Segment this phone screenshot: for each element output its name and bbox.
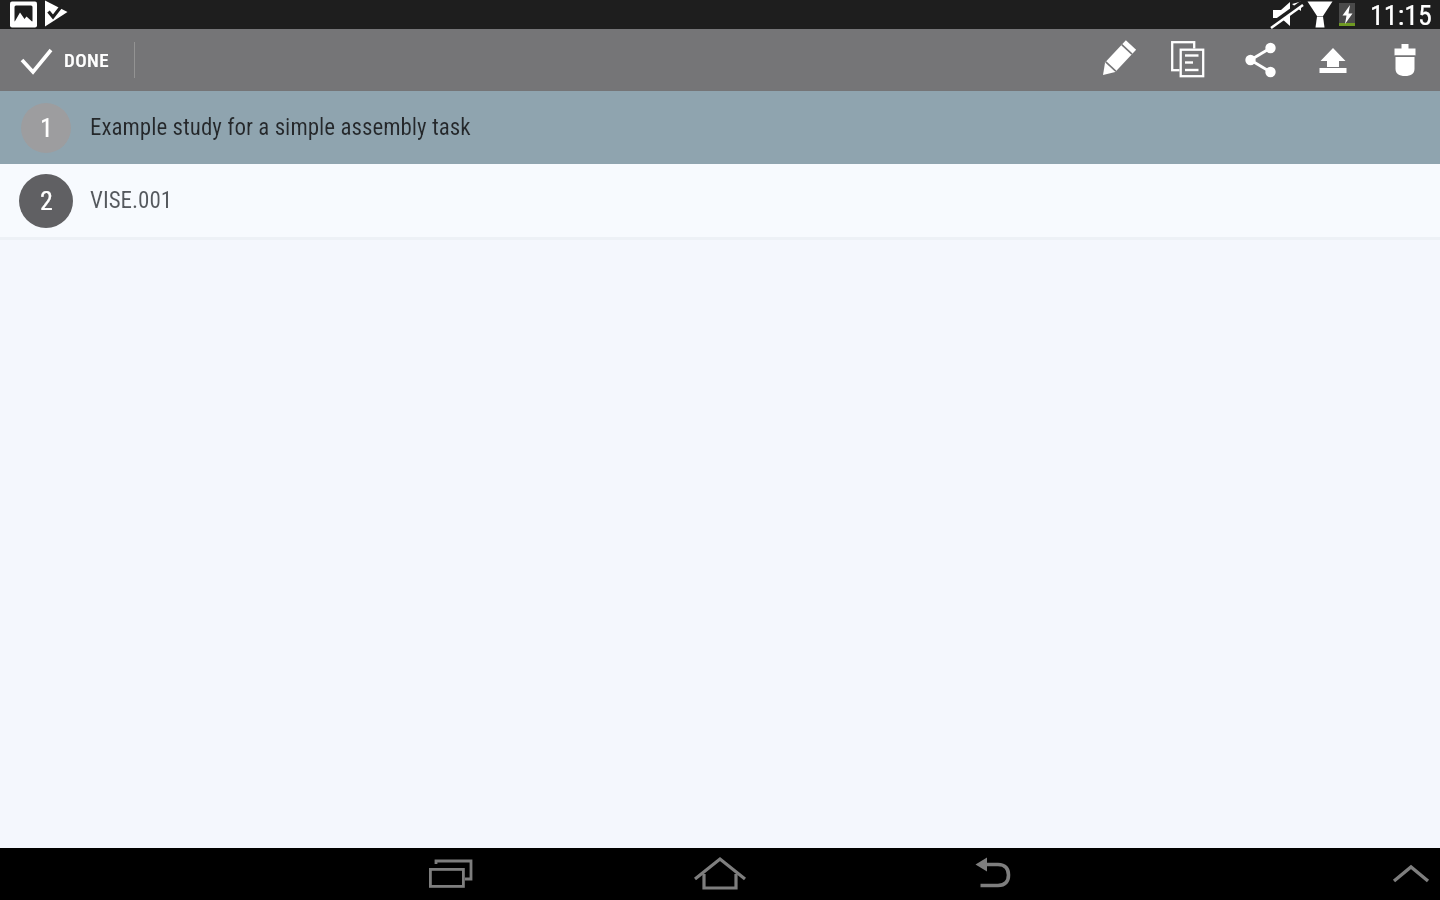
staticText: DONE <box>64 49 109 71</box>
button[interactable]: Show status bar <box>1373 848 1440 900</box>
button[interactable]: Copy <box>1153 29 1225 91</box>
staticText: 11:15 <box>1370 0 1432 28</box>
staticText: Example study for a simple assembly task <box>90 114 471 141</box>
button[interactable]: 2 <box>0 164 1440 237</box>
button[interactable]: Edit <box>1081 29 1153 91</box>
button[interactable]: Delete <box>1369 29 1440 91</box>
button[interactable]: Share <box>1225 29 1297 91</box>
button[interactable]: 1 <box>0 91 1440 164</box>
button[interactable]: Upload <box>1297 29 1369 91</box>
staticText: 2 <box>40 186 53 216</box>
button[interactable]: DONE <box>0 29 129 91</box>
staticText: 1 <box>40 113 53 143</box>
button[interactable]: Home <box>680 848 760 900</box>
button[interactable]: Back <box>958 848 1038 900</box>
button[interactable]: Recent apps <box>414 848 494 900</box>
staticText: VISE.001 <box>90 187 173 214</box>
